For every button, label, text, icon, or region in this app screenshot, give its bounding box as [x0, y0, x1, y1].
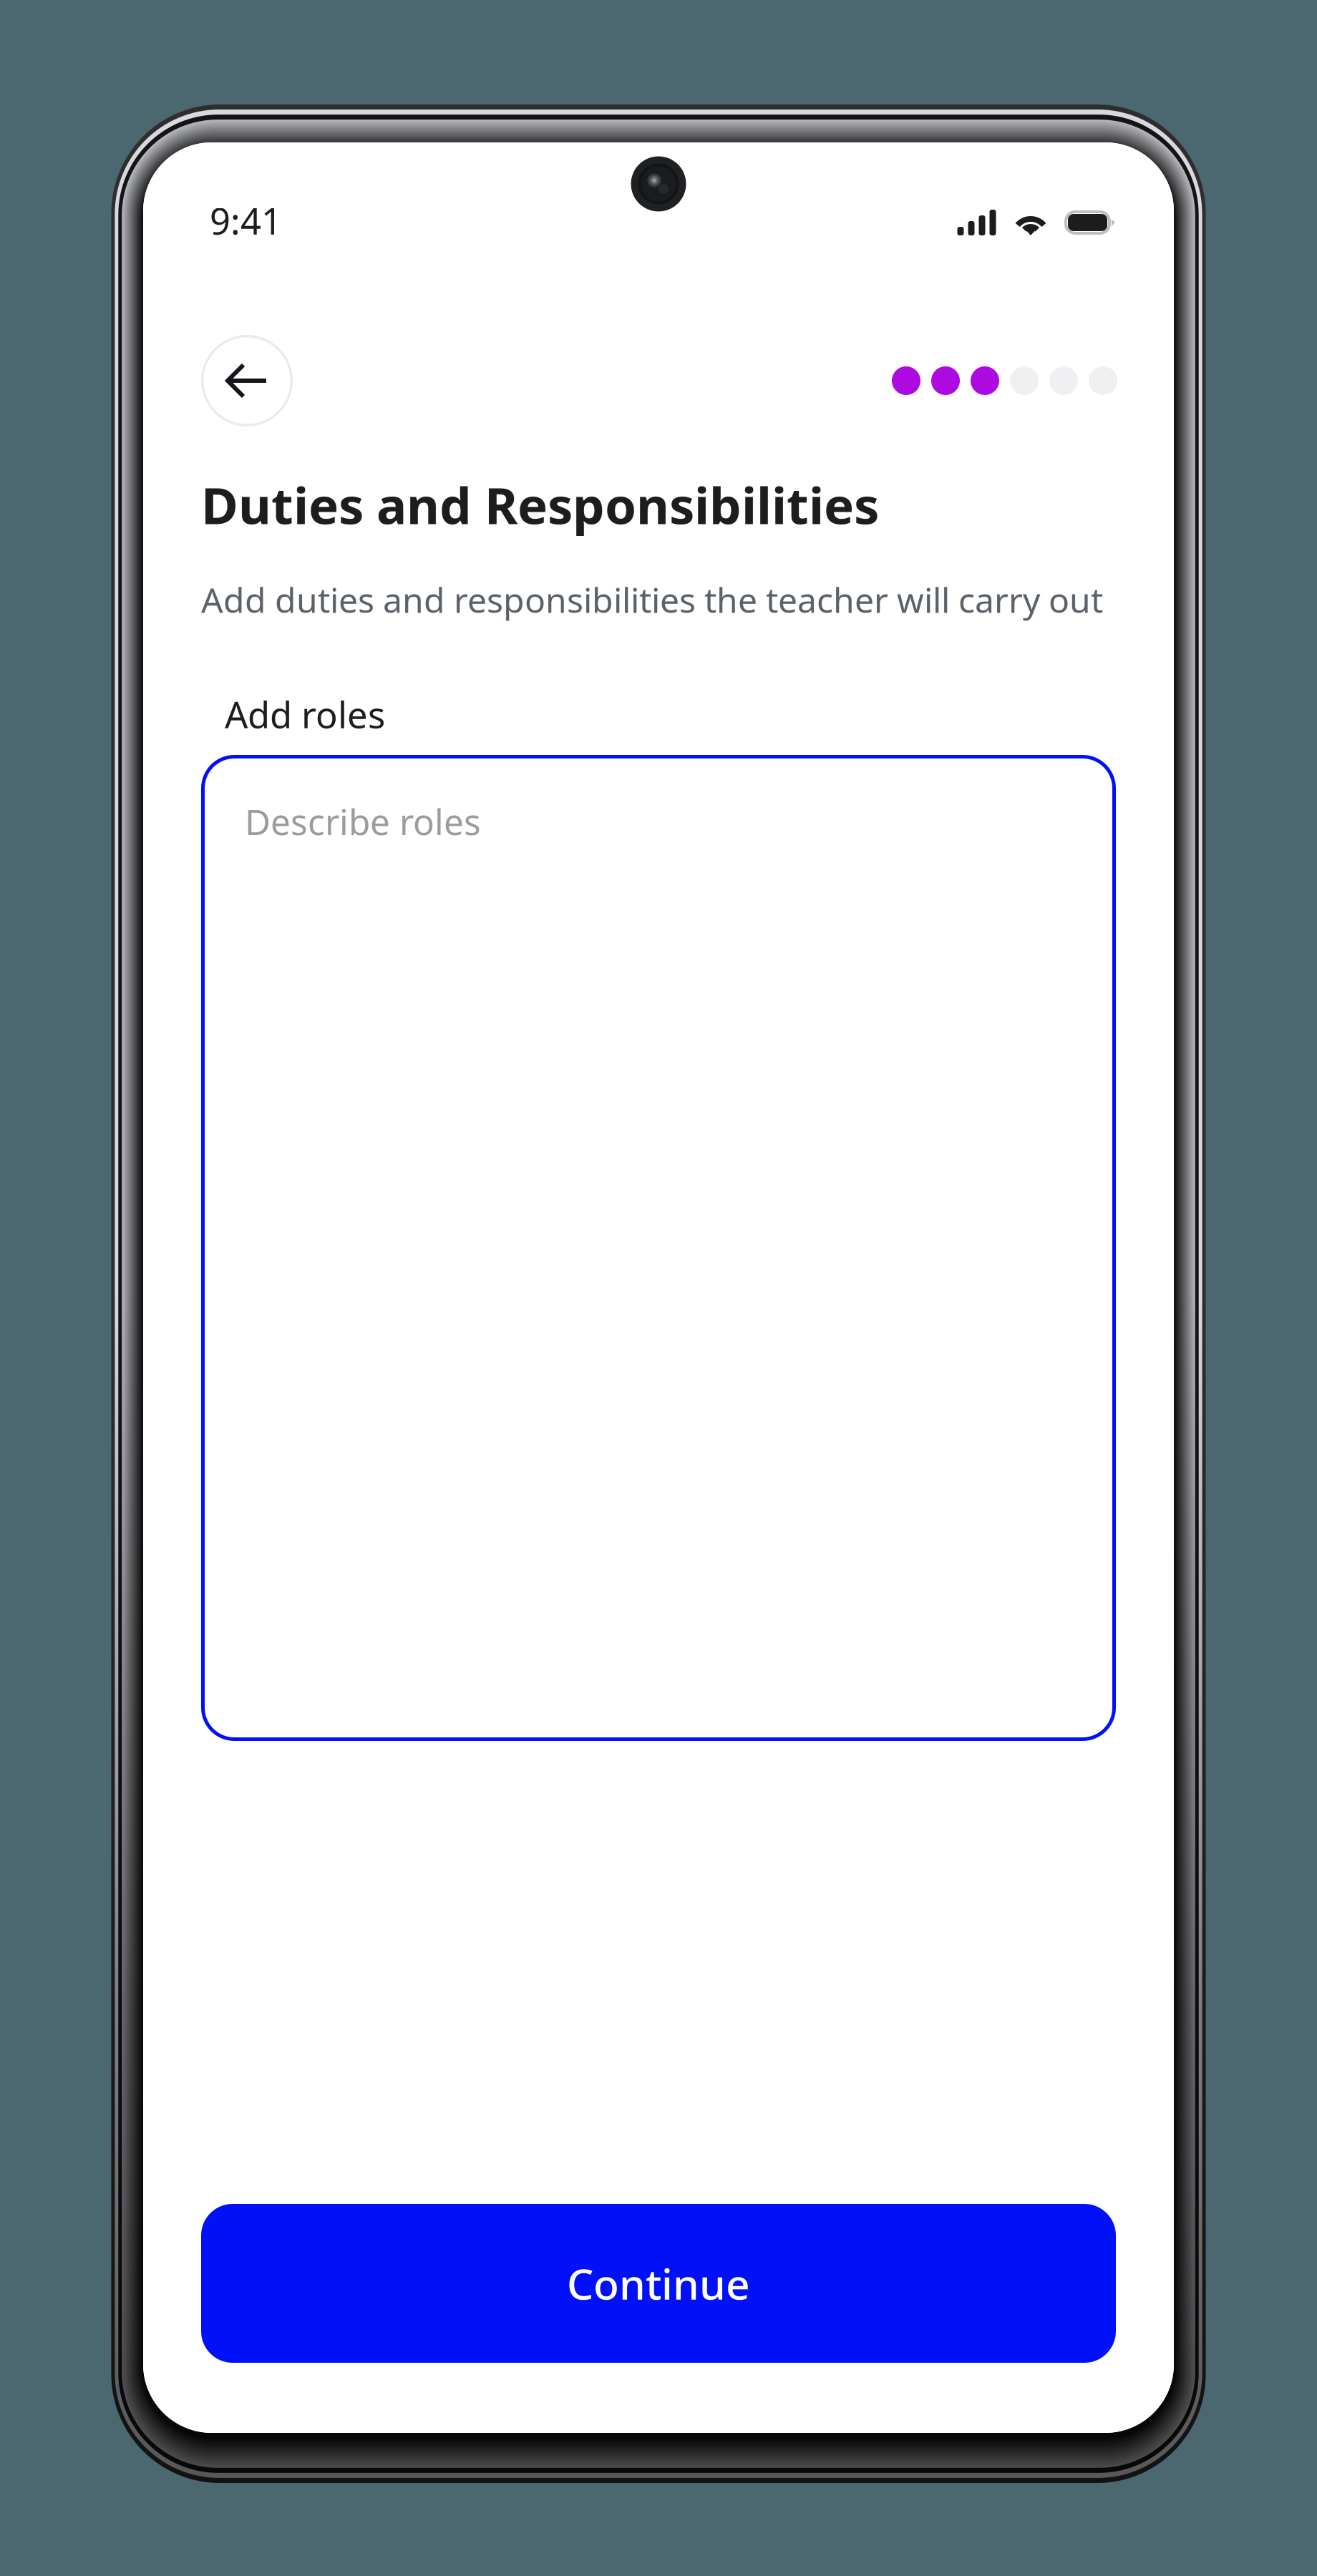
staticText: Duties and Responsibilities — [201, 471, 879, 538]
staticText: Describe roles — [245, 798, 481, 845]
button[interactable]: Continue — [201, 2204, 1116, 2363]
staticText: Add duties and responsibilities the teac… — [201, 577, 1103, 622]
staticText: Continue — [567, 2255, 750, 2311]
staticText: Add roles — [225, 690, 385, 738]
button[interactable]: Back — [201, 335, 293, 426]
staticText: 9:41 — [210, 196, 282, 245]
